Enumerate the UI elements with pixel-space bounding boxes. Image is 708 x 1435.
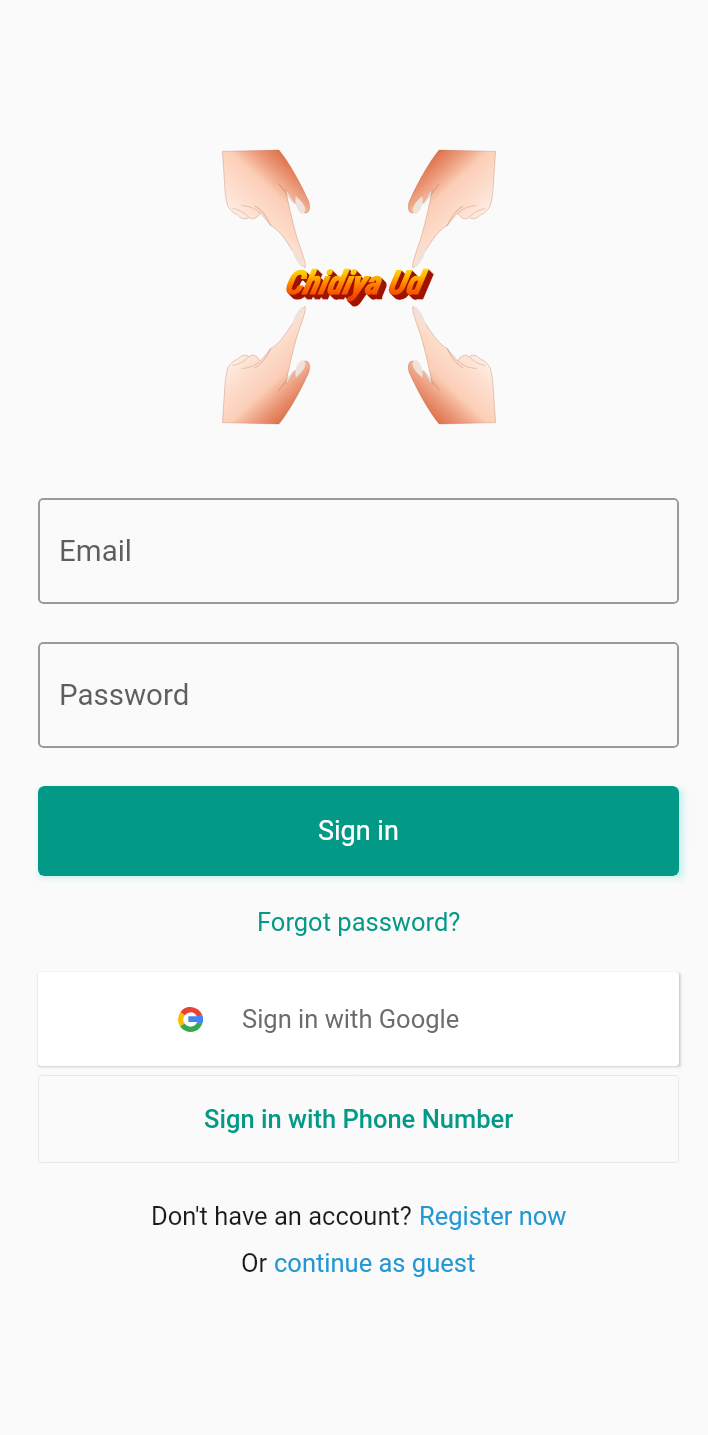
staticText: Forgot password?	[257, 907, 461, 937]
staticText: continue as guest	[274, 1248, 476, 1278]
button[interactable]: Forgot password?	[245, 895, 473, 949]
staticText: Register now	[419, 1201, 567, 1231]
staticText: Sign in with Phone Number	[204, 1104, 514, 1134]
staticText: Or	[241, 1248, 274, 1278]
staticText: Don't have an account?	[151, 1201, 419, 1231]
button[interactable]: Sign in	[38, 786, 679, 876]
button[interactable]: Password	[38, 642, 679, 748]
staticText: Chidiya Ud	[284, 263, 421, 302]
staticText: Sign in	[318, 815, 399, 847]
staticText: Password	[59, 678, 190, 713]
staticText: Email	[59, 534, 133, 569]
button[interactable]: Sign in with Google	[38, 972, 679, 1066]
staticText: Chidiya Ud	[288, 267, 425, 306]
staticText: Chidiya Ud	[286, 265, 423, 304]
staticText: Chidiya Ud	[285, 264, 422, 303]
button[interactable]: Register now	[419, 1201, 567, 1231]
button[interactable]: Email	[38, 498, 679, 604]
button[interactable]: continue as guest	[274, 1248, 476, 1278]
staticText: Chidiya Ud	[287, 266, 424, 305]
staticText: Chidiya Ud	[289, 268, 426, 307]
button[interactable]: Sign in with Phone Number	[38, 1075, 679, 1163]
staticText: Sign in with Google	[242, 1004, 460, 1034]
